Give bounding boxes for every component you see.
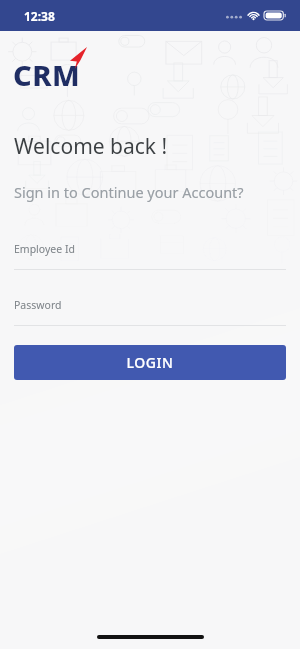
staticText: CRM <box>13 55 81 94</box>
staticText: Sign in to Continue your Account? <box>14 182 244 202</box>
button[interactable]: Password <box>14 298 286 326</box>
staticText: Employee Id <box>14 242 75 256</box>
staticText: Welcome back ! <box>14 132 168 161</box>
staticText: LOGIN <box>126 353 174 372</box>
button[interactable]: Employee Id <box>14 242 286 270</box>
button[interactable]: LOGIN <box>14 345 286 380</box>
staticText: Password <box>14 298 62 312</box>
other: Home <box>97 635 204 639</box>
staticText: 12:38 <box>24 8 55 24</box>
